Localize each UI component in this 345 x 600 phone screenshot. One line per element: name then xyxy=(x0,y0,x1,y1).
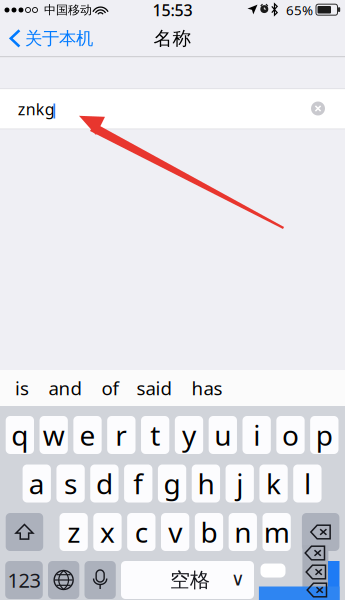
staticText: 空格 xyxy=(170,568,210,592)
staticText: x xyxy=(100,513,115,551)
button[interactable]: l xyxy=(293,464,321,502)
staticText: m xyxy=(264,513,290,551)
button[interactable]: a xyxy=(23,464,51,502)
button[interactable]: 关于本机 xyxy=(0,20,100,57)
staticText: said xyxy=(136,376,171,400)
staticText: d xyxy=(96,465,113,502)
staticText: b xyxy=(200,513,217,551)
staticText: p xyxy=(316,416,333,454)
button[interactable]: g xyxy=(158,464,186,502)
staticText: e xyxy=(79,416,95,454)
button[interactable]: r xyxy=(107,416,135,454)
staticText: and xyxy=(48,376,81,400)
staticText: u xyxy=(214,416,231,454)
staticText: v xyxy=(168,513,182,551)
staticText: n xyxy=(234,513,251,551)
button[interactable]: Return xyxy=(300,561,339,600)
button[interactable]: k xyxy=(259,464,288,502)
button[interactable]: 123 xyxy=(5,561,43,599)
button[interactable]: e xyxy=(73,416,102,454)
staticText: 中国移动 xyxy=(44,3,92,17)
button[interactable]: v xyxy=(161,513,189,551)
button[interactable]: Next keyboard xyxy=(48,561,79,599)
staticText: ∨ xyxy=(231,568,245,590)
staticText: g xyxy=(164,465,181,502)
staticText: w xyxy=(43,416,65,454)
button[interactable]: of xyxy=(89,370,131,406)
staticText: k xyxy=(266,465,281,502)
button[interactable]: z xyxy=(59,513,88,551)
staticText: z xyxy=(67,513,80,551)
staticText: has xyxy=(191,376,222,400)
button[interactable] xyxy=(121,561,254,599)
button[interactable]: c xyxy=(127,513,155,551)
button[interactable]: y xyxy=(175,416,203,454)
button[interactable]: w xyxy=(39,416,68,454)
button[interactable]: has xyxy=(186,370,228,406)
button[interactable]: n xyxy=(229,513,257,551)
button[interactable]: said xyxy=(133,370,175,406)
button[interactable]: b xyxy=(195,513,223,551)
staticText: a xyxy=(29,465,45,502)
staticText: 123 xyxy=(7,567,40,593)
button[interactable]: and xyxy=(44,370,86,406)
staticText: of xyxy=(101,376,118,400)
staticText: j xyxy=(236,465,243,502)
staticText: 65% xyxy=(286,1,313,19)
staticText: znkg xyxy=(18,98,55,120)
staticText: l xyxy=(304,465,311,502)
button[interactable]: x xyxy=(93,513,122,551)
button[interactable]: m xyxy=(262,513,291,551)
button[interactable]: o xyxy=(276,416,305,454)
button[interactable]: s xyxy=(56,464,85,502)
staticText: i xyxy=(253,416,260,454)
button[interactable]: j xyxy=(226,464,254,502)
button[interactable]: is xyxy=(1,370,43,406)
button[interactable]: p xyxy=(310,416,338,454)
button[interactable]: Dictation xyxy=(84,561,116,599)
staticText: 15:53 xyxy=(152,0,192,21)
button[interactable]: q xyxy=(6,416,34,454)
staticText: 名称 xyxy=(153,27,191,50)
staticText: r xyxy=(115,416,127,454)
button[interactable]: Delete xyxy=(302,513,339,551)
staticText: is xyxy=(15,376,29,400)
button[interactable]: d xyxy=(90,464,119,502)
staticText: 关于本机 xyxy=(25,28,93,49)
staticText: h xyxy=(197,465,214,502)
button[interactable]: znkg xyxy=(0,89,345,129)
button[interactable]: h xyxy=(192,464,220,502)
staticText: q xyxy=(11,416,28,454)
staticText: f xyxy=(133,465,143,502)
staticText: o xyxy=(282,416,299,454)
staticText: c xyxy=(135,513,148,551)
button[interactable]: u xyxy=(209,416,237,454)
button[interactable]: i xyxy=(242,416,271,454)
button[interactable]: Shift xyxy=(6,513,43,551)
staticText: s xyxy=(64,465,77,502)
staticText: y xyxy=(182,416,196,454)
button[interactable]: t xyxy=(141,416,169,454)
staticText: t xyxy=(150,416,160,454)
button[interactable]: f xyxy=(124,464,152,502)
